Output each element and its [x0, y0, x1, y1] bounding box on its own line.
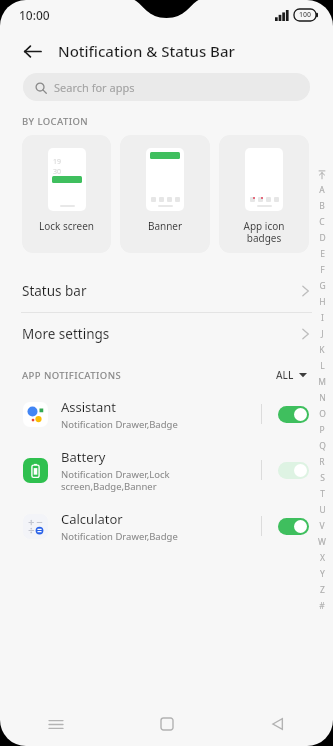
staticText: T: [320, 488, 325, 500]
button[interactable]: More settings: [0, 313, 333, 355]
button[interactable]: Banner: [120, 135, 210, 253]
button[interactable]: Recent apps: [0, 702, 111, 746]
button[interactable]: Battery: [0, 442, 333, 498]
staticText: Banner: [120, 219, 210, 233]
staticText: Notification Drawer,Badge: [61, 418, 178, 431]
staticText: J: [321, 328, 324, 340]
staticText: ALL: [276, 368, 294, 382]
button[interactable]: Calculator: [0, 498, 333, 554]
button[interactable]: Toggle notifications: [278, 406, 309, 423]
button[interactable]: App icon badges: [219, 135, 309, 253]
button[interactable]: 19: [22, 135, 111, 253]
staticText: Y: [320, 568, 325, 580]
staticText: A: [319, 184, 325, 196]
button[interactable]: Back: [222, 702, 333, 746]
staticText: H: [319, 296, 326, 308]
staticText: O: [319, 408, 326, 420]
staticText: S: [320, 472, 325, 484]
staticText: C: [319, 216, 325, 228]
staticText: K: [319, 344, 325, 356]
staticText: 30: [53, 167, 62, 177]
staticText: 19: [53, 157, 62, 167]
staticText: Z: [320, 584, 325, 596]
staticText: BY LOCATION: [22, 115, 89, 128]
staticText: Battery: [61, 448, 106, 466]
staticText: D: [319, 232, 326, 244]
staticText: Lock screen: [22, 219, 111, 233]
staticText: L: [320, 360, 325, 372]
staticText: More settings: [22, 325, 110, 343]
button[interactable]: Status bar: [0, 270, 333, 312]
staticText: R: [319, 456, 325, 468]
button[interactable]: Alphabet index: [315, 170, 329, 614]
button[interactable]: Home: [111, 702, 222, 746]
staticText: U: [319, 504, 326, 516]
staticText: M: [318, 376, 326, 388]
staticText: App icon badges: [219, 219, 309, 245]
staticText: V: [319, 520, 325, 532]
staticText: W: [318, 536, 326, 548]
staticText: APP NOTIFICATIONS: [22, 369, 122, 382]
staticText: Assistant: [61, 398, 117, 416]
staticText: B: [319, 200, 325, 212]
staticText: #: [319, 600, 325, 612]
button[interactable]: Search for apps: [23, 73, 310, 101]
button[interactable]: Assistant: [0, 386, 333, 442]
staticText: Notification & Status Bar: [58, 41, 235, 61]
staticText: N: [319, 392, 326, 404]
staticText: Notification Drawer,Lock screen,Badge,Ba…: [61, 468, 170, 493]
staticText: 10:00: [19, 7, 50, 23]
staticText: F: [320, 264, 325, 276]
staticText: P: [319, 424, 325, 436]
button[interactable]: Back: [17, 36, 47, 66]
staticText: Notification Drawer,Badge: [61, 530, 178, 543]
staticText: I: [321, 312, 324, 324]
staticText: G: [319, 280, 326, 292]
staticText: Calculator: [61, 510, 123, 528]
staticText: Q: [319, 440, 326, 452]
staticText: Status bar: [22, 282, 87, 300]
staticText: 100: [299, 10, 312, 20]
staticText: E: [320, 248, 325, 260]
staticText: X: [320, 552, 325, 564]
staticText: Search for apps: [54, 80, 135, 95]
button[interactable]: Toggle notifications: [278, 462, 309, 479]
button[interactable]: Toggle notifications: [278, 518, 309, 535]
button[interactable]: ALL: [276, 368, 307, 382]
